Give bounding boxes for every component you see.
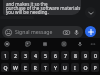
button[interactable]: Camera [63,29,70,36]
button[interactable]: 5 [41,51,49,60]
staticText: 8 [74,52,77,59]
staticText: T [44,64,47,71]
staticText: 1 [4,52,7,59]
button[interactable]: Translate [42,41,48,47]
button[interactable]: More options [90,41,96,47]
staticText: O [83,64,88,71]
button[interactable]: 0 [91,51,99,60]
staticText: and makes it so the purchase of the soft… [6,1,81,15]
staticText: 2 [14,52,17,59]
button[interactable]: Clipboard [61,41,67,47]
staticText: 7 [64,52,67,59]
button[interactable]: I [71,63,79,72]
button[interactable]: 3 [21,51,29,60]
button[interactable]: Scroll to bottom [85,7,96,18]
button[interactable]: 7 [61,51,69,60]
button[interactable]: U [61,63,69,72]
staticText: W [13,64,18,71]
button[interactable]: Voice input [77,41,83,47]
staticText: Signal message [15,29,53,36]
staticText: 4 [34,52,37,59]
staticText: 3 [24,52,27,59]
staticText: 5 [44,52,47,59]
button[interactable]: R [31,63,39,72]
button[interactable]: T [41,63,49,72]
staticText: Y [54,64,57,71]
button[interactable]: E [21,63,29,72]
button[interactable]: Emoji [2,26,83,38]
staticText: Q [3,64,8,71]
button[interactable]: Add attachment [85,26,96,37]
button[interactable]: 9 [81,51,89,60]
button[interactable]: 6 [51,51,59,60]
button[interactable]: Q [1,63,9,72]
staticText: 0 [94,52,97,59]
staticText: E [24,64,27,71]
button[interactable]: Emoji [5,29,12,36]
button[interactable]: 1 [1,51,9,60]
staticText: U [63,64,67,71]
button[interactable]: Y [51,63,59,72]
button[interactable]: Stickers [25,41,31,47]
staticText: 9 [84,52,87,59]
button[interactable]: 2 [11,51,19,60]
button[interactable]: GIF [4,41,10,47]
button[interactable]: 4 [31,51,39,60]
button[interactable]: W [11,63,19,72]
button[interactable]: 8 [71,51,79,60]
staticText: 6 [54,52,57,59]
button[interactable]: Voice message [73,29,80,36]
staticText: R [33,64,37,71]
staticText: P [93,64,97,71]
button[interactable]: and makes it so the purchase of the soft… [3,0,81,15]
staticText: I [74,64,76,71]
button[interactable]: P [91,63,99,72]
button[interactable]: O [81,63,89,72]
